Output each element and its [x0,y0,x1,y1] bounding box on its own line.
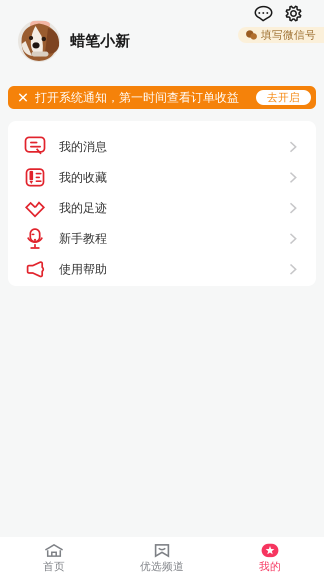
staticText: 填写微信号 [261,28,316,41]
staticText: 新手教程 [59,231,107,246]
staticText: 首页 [43,560,65,573]
button[interactable]: 我的消息 [8,131,316,162]
button[interactable]: 填写微信号 [238,27,324,43]
button[interactable]: Profile photo [18,20,60,62]
button[interactable]: 新手教程 [8,223,316,254]
button[interactable]: 蜡笔小新 [60,32,130,50]
button[interactable]: 我的 [216,543,324,574]
staticText: 我的消息 [59,139,107,154]
button[interactable]: 首页 [0,543,108,574]
button[interactable]: Messages [254,6,273,21]
button[interactable]: Settings [273,6,302,21]
staticText: 使用帮助 [59,262,107,276]
staticText: 优选频道 [140,560,184,573]
button[interactable]: 使用帮助 [8,254,316,284]
button[interactable]: 我的收藏 [8,162,316,193]
staticText: 打开系统通知，第一时间查看订单收益 [35,90,239,105]
button[interactable]: 优选频道 [108,543,216,574]
staticText: 我的 [259,560,281,573]
staticText: 去开启 [267,91,300,104]
staticText: 我的足迹 [59,201,107,215]
staticText: 蜡笔小新 [70,32,130,50]
button[interactable]: 我的足迹 [8,193,316,223]
staticText: 我的收藏 [59,170,107,185]
button[interactable]: 打开系统通知，第一时间查看订单收益 [8,86,316,109]
